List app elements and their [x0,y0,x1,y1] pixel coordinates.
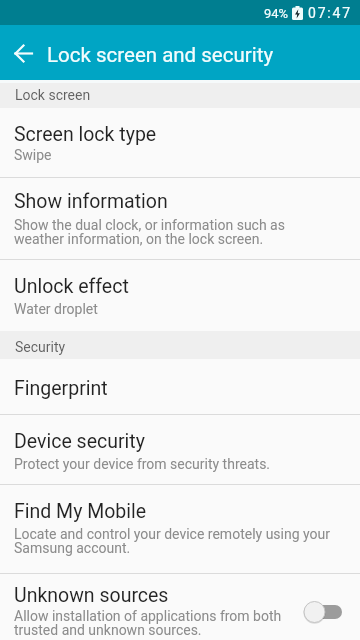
staticText: 94% [264,6,289,21]
staticText: Unknown sources [14,584,169,607]
staticText: Unlock effect [14,275,129,298]
staticText: Show information [14,190,168,213]
staticText: Security [15,339,66,355]
staticText: Lock screen and security [47,43,274,67]
staticText: Locate and control your device remotely … [14,526,331,557]
staticText: Fingerprint [14,377,108,400]
staticText: Allow installation of applications from … [14,608,282,639]
staticText: 07:47 [308,5,352,21]
staticText: Screen lock type [14,123,157,146]
staticText: Protect your device from security threat… [14,456,271,472]
staticText: Lock screen [15,87,91,103]
staticText: Swipe [14,147,52,163]
staticText: Find My Mobile [14,500,147,523]
staticText: Device security [14,430,145,453]
staticText: Show the dual clock, or information such… [14,217,285,248]
staticText: Water droplet [14,301,98,317]
